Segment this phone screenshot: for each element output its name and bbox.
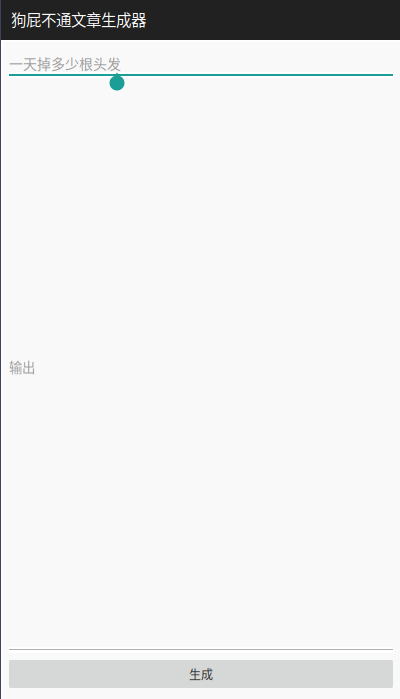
- staticText: 一天掉多少根头发: [9, 53, 121, 73]
- staticText: 输出: [9, 357, 35, 376]
- staticText: 狗屁不通文章生成器: [11, 8, 146, 30]
- staticText: 生成: [189, 665, 213, 683]
- button[interactable]: 一天掉多少根头发: [9, 42, 393, 78]
- button[interactable]: 生成: [9, 660, 393, 688]
